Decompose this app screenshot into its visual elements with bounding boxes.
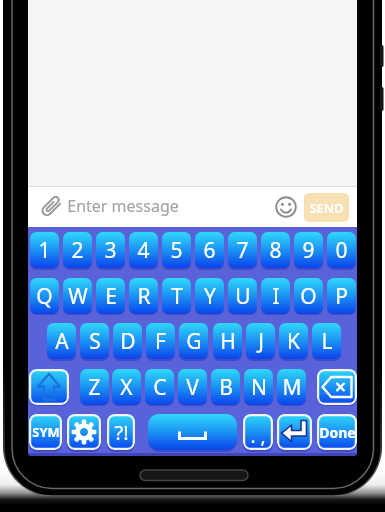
staticText: Q <box>36 282 53 311</box>
button[interactable]: 7 <box>228 232 257 268</box>
staticText: X <box>120 373 133 402</box>
staticText: 5 <box>170 236 183 265</box>
staticText: ?! <box>114 419 129 446</box>
button[interactable] <box>29 369 69 405</box>
staticText: W <box>68 282 88 311</box>
staticText: H <box>220 327 236 356</box>
staticText: E <box>105 282 117 311</box>
button[interactable]: 2 <box>63 232 92 268</box>
button[interactable]: P <box>327 278 356 314</box>
staticText: 7 <box>236 236 249 265</box>
staticText: SYM <box>32 423 60 441</box>
button[interactable] <box>317 369 357 405</box>
button[interactable]: N <box>244 369 273 405</box>
staticText: C <box>153 373 167 402</box>
staticText: J <box>258 327 264 356</box>
button[interactable]: E <box>96 278 125 314</box>
button[interactable]: R <box>129 278 158 314</box>
staticText: Y <box>204 282 216 311</box>
staticText: U <box>235 282 251 311</box>
staticText: G <box>186 327 202 356</box>
button[interactable]: O <box>294 278 323 314</box>
staticText: 4 <box>137 236 150 265</box>
button[interactable]: Z <box>80 369 109 405</box>
staticText: . , <box>250 423 266 449</box>
button[interactable]: W <box>63 278 92 314</box>
staticText: 6 <box>203 236 216 265</box>
button[interactable]: V <box>178 369 207 405</box>
button[interactable] <box>274 187 304 227</box>
staticText: Done <box>319 423 356 442</box>
staticText: F <box>155 327 166 356</box>
button[interactable]: 8 <box>261 232 290 268</box>
staticText: 8 <box>269 236 282 265</box>
button[interactable]: F <box>146 323 175 359</box>
staticText: D <box>120 327 136 356</box>
button[interactable]: SEND <box>304 193 349 222</box>
staticText: Enter message <box>67 195 179 217</box>
button[interactable]: 1 <box>30 232 59 268</box>
button[interactable]: Q <box>30 278 59 314</box>
staticText: 2 <box>71 236 84 265</box>
staticText: M <box>282 373 302 402</box>
button[interactable] <box>67 414 101 450</box>
staticText: Z <box>88 373 101 402</box>
button[interactable]: I <box>261 278 290 314</box>
button[interactable] <box>148 414 237 450</box>
staticText: R <box>137 282 151 311</box>
button[interactable]: 5 <box>162 232 191 268</box>
button[interactable] <box>28 187 62 227</box>
button[interactable]: S <box>80 323 109 359</box>
staticText: N <box>251 373 267 402</box>
button[interactable]: SYM <box>29 414 62 450</box>
button[interactable]: 3 <box>96 232 125 268</box>
staticText: K <box>287 327 300 356</box>
staticText: L <box>321 327 333 356</box>
button[interactable]: X <box>112 369 141 405</box>
button[interactable]: M <box>277 369 306 405</box>
staticText: T <box>171 282 183 311</box>
staticText: 3 <box>104 236 117 265</box>
button[interactable]: ?! <box>107 414 135 450</box>
staticText: P <box>335 282 348 311</box>
button[interactable]: 4 <box>129 232 158 268</box>
button[interactable]: 6 <box>195 232 224 268</box>
button[interactable]: L <box>312 323 341 359</box>
button[interactable]: 9 <box>294 232 323 268</box>
button[interactable]: H <box>213 323 242 359</box>
button[interactable]: G <box>179 323 208 359</box>
staticText: B <box>219 373 233 402</box>
button[interactable] <box>277 414 312 450</box>
staticText: A <box>55 327 69 356</box>
button[interactable]: 0 <box>327 232 356 268</box>
button[interactable]: J <box>246 323 275 359</box>
staticText: 9 <box>302 236 315 265</box>
button[interactable]: Done <box>317 414 357 450</box>
button[interactable]: B <box>211 369 240 405</box>
button[interactable]: D <box>113 323 142 359</box>
button[interactable]: U <box>228 278 257 314</box>
button[interactable]: . , <box>243 414 273 450</box>
staticText: O <box>300 282 317 311</box>
staticText: S <box>89 327 101 356</box>
button[interactable]: C <box>145 369 174 405</box>
button[interactable]: K <box>279 323 308 359</box>
button[interactable]: A <box>47 323 76 359</box>
staticText: 1 <box>38 236 51 265</box>
staticText: 0 <box>335 236 348 265</box>
staticText: SEND <box>309 199 344 217</box>
staticText: V <box>186 373 199 402</box>
staticText: I <box>272 282 280 311</box>
button[interactable]: T <box>162 278 191 314</box>
button[interactable]: Y <box>195 278 224 314</box>
button[interactable]: Enter message <box>28 187 357 227</box>
